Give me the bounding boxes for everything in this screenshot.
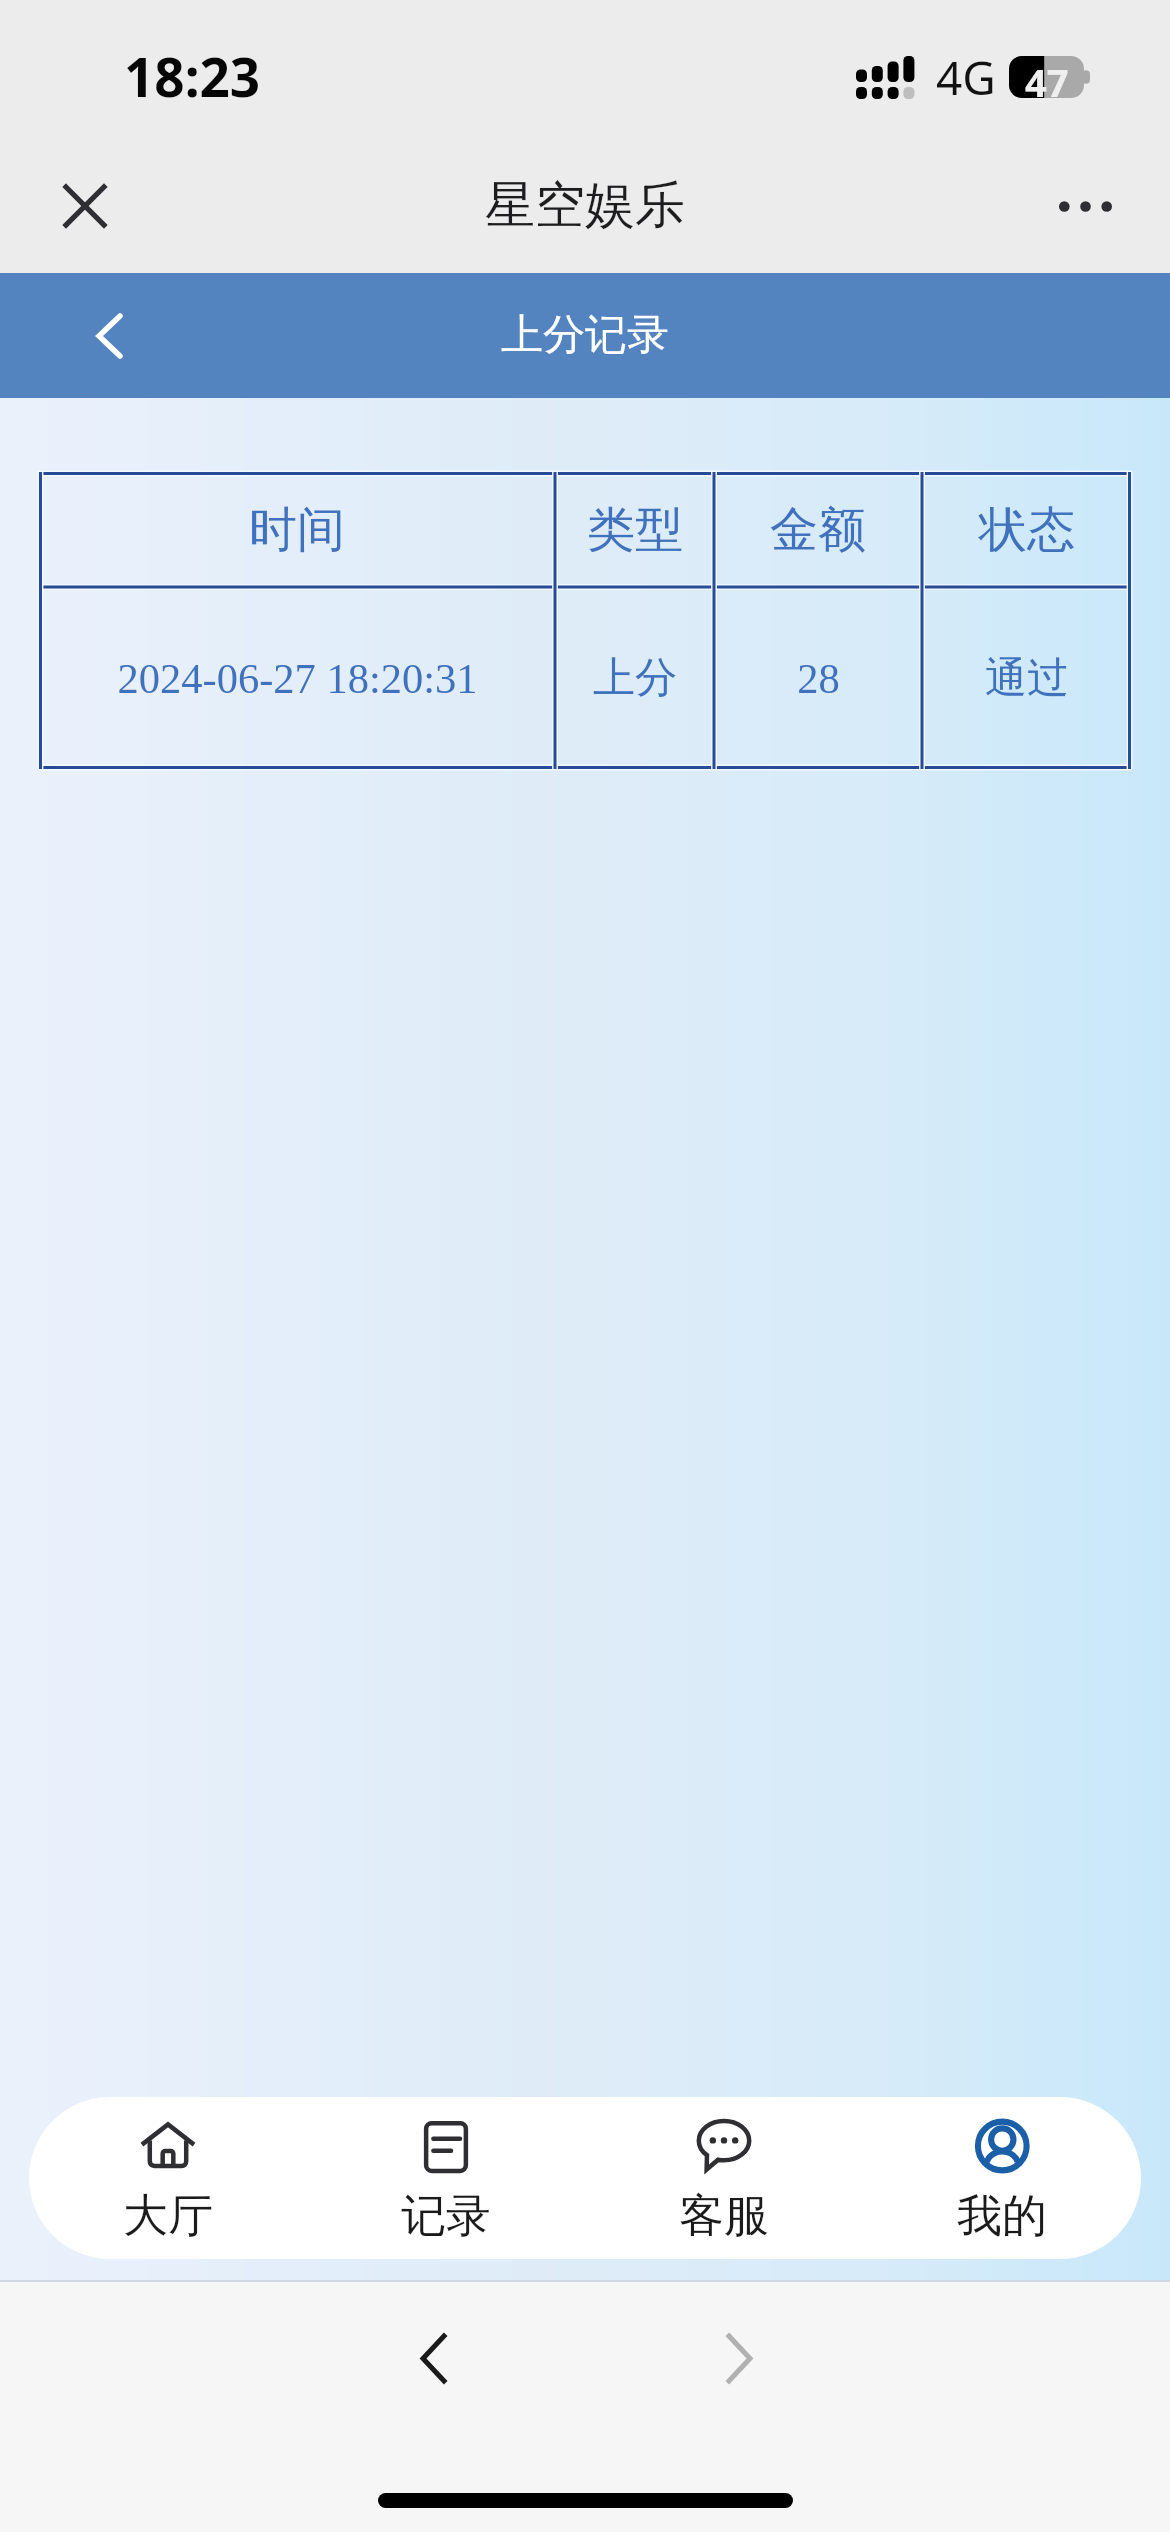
staticText: 我的 [957,2188,1047,2245]
staticText: 客服 [679,2188,769,2245]
button[interactable]: 我的 [863,2097,1141,2259]
staticText: 类型 [587,500,683,560]
staticText: 18:23 [124,40,261,112]
staticText: 47 [1025,56,1069,98]
staticText: 金额 [770,500,866,560]
staticText: 状态 [979,500,1075,560]
staticText: 上分 [593,652,677,705]
staticText: 大厅 [123,2188,213,2245]
staticText: 4G [936,46,996,109]
button[interactable]: Back [68,295,150,377]
button[interactable]: More options [1045,166,1125,246]
staticText: 星空娱乐 [485,174,685,237]
staticText: 通过 [985,652,1069,705]
staticText: 时间 [249,500,345,560]
staticText: 2024-06-27 18:20:31 [117,655,478,702]
button[interactable]: 客服 [585,2097,863,2259]
staticText: 28 [797,655,840,702]
staticText: 上分记录 [501,309,669,362]
button[interactable]: Forward [679,2303,799,2413]
button[interactable]: 记录 [307,2097,585,2259]
button[interactable]: Close [45,166,125,246]
staticText: 记录 [401,2188,491,2245]
button[interactable]: Back [373,2303,493,2413]
button[interactable]: 大厅 [29,2097,307,2259]
